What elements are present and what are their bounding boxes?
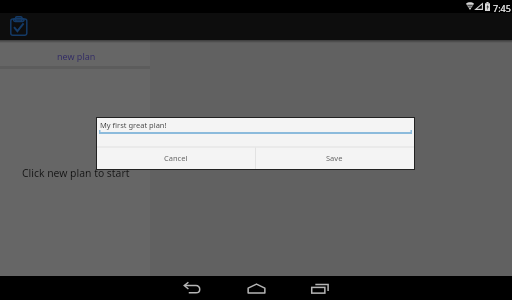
staticText: Save [326,153,343,163]
button[interactable]: Back [180,276,204,300]
staticText: 7:45 [493,2,511,14]
staticText: new plan [57,50,96,62]
staticText: Click new plan to start [22,166,130,180]
button[interactable]: App icon [4,14,31,39]
button[interactable]: new plan [0,40,150,66]
button[interactable]: Cancel [97,147,255,169]
staticText: My first great plan! [100,120,167,130]
staticText: Cancel [164,153,188,163]
button[interactable]: Save [255,147,414,169]
button[interactable]: Recent apps [308,276,332,300]
button[interactable]: Home [244,276,268,300]
